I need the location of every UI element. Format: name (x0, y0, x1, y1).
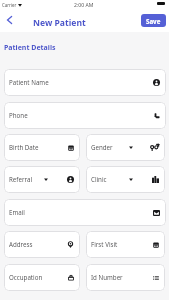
staticText: Phone (9, 111, 28, 119)
staticText: New Patient (33, 17, 86, 29)
button[interactable]: Back (3, 13, 16, 27)
button[interactable]: Patient Name (4, 69, 166, 96)
staticText: Referral (9, 175, 33, 183)
button[interactable]: Occupation (4, 264, 80, 291)
staticText: Birth Date (9, 143, 39, 151)
button[interactable]: Phone (4, 102, 166, 129)
staticText: Clinic (91, 175, 107, 183)
button[interactable]: First Visit (86, 231, 165, 258)
button[interactable]: Email (4, 199, 166, 226)
button[interactable]: Referral (4, 166, 80, 193)
staticText: First Visit (91, 240, 118, 248)
button[interactable]: Birth Date (4, 134, 80, 161)
button[interactable]: Gender (86, 134, 165, 161)
staticText: Carrier (2, 2, 17, 8)
staticText: Occupation (9, 273, 43, 281)
staticText: Patient Details (4, 43, 56, 53)
staticText: Address (9, 240, 33, 248)
button[interactable]: Save (141, 14, 166, 27)
staticText: Gender (91, 143, 113, 151)
button[interactable]: Id Number (86, 264, 165, 291)
staticText: Save (146, 17, 161, 25)
staticText: Patient Name (9, 78, 49, 86)
staticText: Email (9, 208, 25, 216)
button[interactable]: Clinic (86, 166, 165, 193)
button[interactable]: Address (4, 231, 80, 258)
staticText: Id Number (91, 273, 123, 281)
staticText: 2:00 AM (74, 2, 94, 9)
